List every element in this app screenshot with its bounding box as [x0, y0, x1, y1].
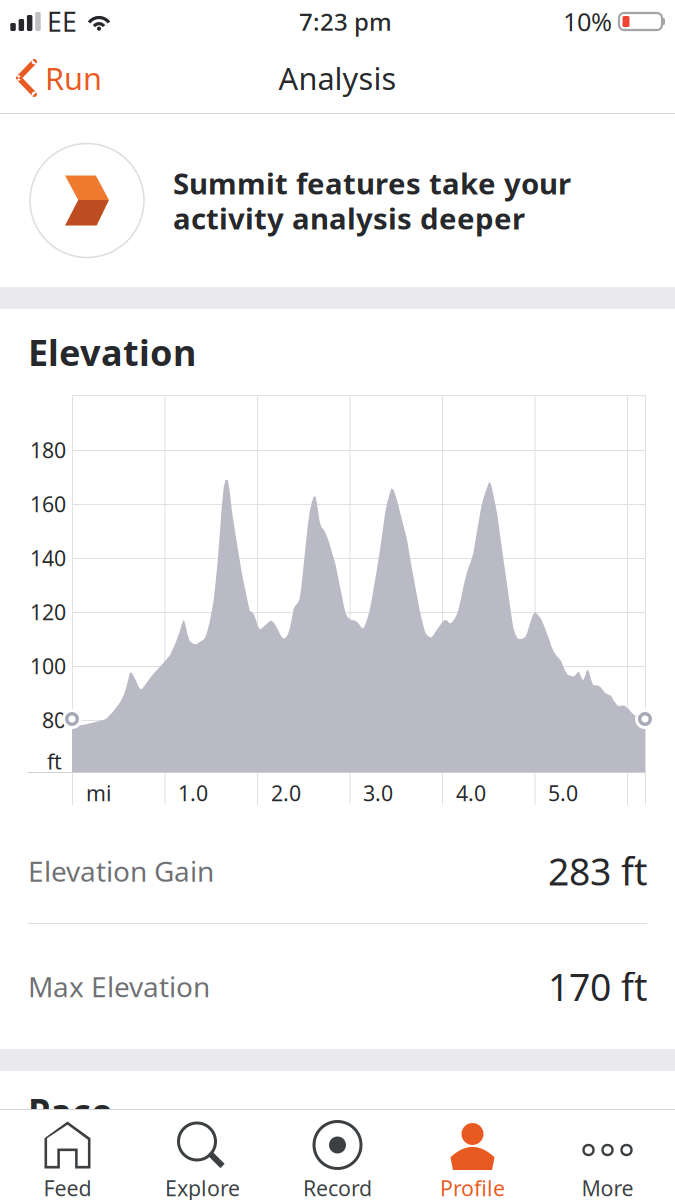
- staticText: EE: [47, 4, 77, 39]
- staticText: ft: [47, 747, 62, 775]
- staticText: 5.0: [548, 779, 578, 807]
- staticText: 160: [30, 490, 66, 518]
- button[interactable]: Feed: [0, 1110, 135, 1200]
- staticText: 1.0: [178, 779, 208, 807]
- staticText: 3.0: [363, 779, 393, 807]
- button[interactable]: Max Elevation: [0, 924, 675, 1049]
- button[interactable]: More: [540, 1110, 675, 1200]
- button[interactable]: Record: [270, 1110, 405, 1200]
- staticText: Record: [303, 1174, 372, 1200]
- staticText: 100: [30, 652, 66, 680]
- staticText: Elevation: [28, 328, 196, 376]
- staticText: 120: [30, 598, 66, 626]
- staticText: Elevation Gain: [28, 852, 214, 890]
- staticText: 170 ft: [548, 962, 647, 1011]
- staticText: Run: [45, 58, 102, 98]
- staticText: Pace: [28, 1087, 112, 1135]
- staticText: Explore: [165, 1174, 240, 1200]
- staticText: Max Elevation: [28, 968, 210, 1005]
- staticText: 7:23 pm: [299, 6, 392, 37]
- staticText: Summit features take your: [173, 163, 571, 202]
- staticText: Analysis: [278, 58, 396, 98]
- staticText: 4.0: [456, 779, 486, 807]
- staticText: activity analysis deeper: [173, 198, 525, 237]
- staticText: 2.0: [271, 779, 301, 807]
- staticText: 80: [42, 706, 66, 734]
- button[interactable]: Explore: [135, 1110, 270, 1200]
- staticText: Feed: [43, 1174, 91, 1200]
- staticText: 180: [30, 436, 66, 464]
- staticText: 283 ft: [548, 846, 647, 896]
- staticText: Profile: [440, 1174, 505, 1200]
- button[interactable]: Profile: [405, 1110, 540, 1200]
- staticText: 10%: [563, 5, 612, 38]
- staticText: mi: [86, 779, 112, 807]
- button[interactable]: Summit features take your: [0, 114, 675, 287]
- staticText: 140: [30, 544, 66, 572]
- button[interactable]: Elevation Gain: [0, 819, 675, 923]
- button[interactable]: Run: [0, 43, 112, 113]
- staticText: More: [581, 1174, 633, 1200]
